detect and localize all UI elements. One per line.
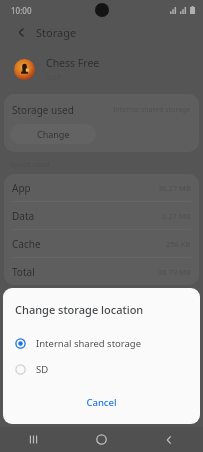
button[interactable]: Cache xyxy=(4,229,199,257)
staticText: Chess Free xyxy=(46,56,100,70)
button[interactable]: Recents xyxy=(0,427,67,452)
button[interactable]: Cancel xyxy=(74,392,129,413)
staticText: Data xyxy=(12,209,35,223)
button[interactable]: Total xyxy=(4,257,199,285)
button[interactable]: App xyxy=(4,174,199,201)
staticText: Cancel xyxy=(86,396,117,409)
button[interactable]: Home xyxy=(67,427,135,452)
staticText: 258 KB xyxy=(166,239,191,249)
button[interactable]: Back xyxy=(12,23,30,41)
staticText: Change xyxy=(37,128,70,140)
button[interactable]: Internal shared storage xyxy=(3,330,200,356)
staticText: SD xyxy=(36,363,49,376)
staticText: Storage xyxy=(36,25,77,40)
button[interactable]: SD xyxy=(3,356,200,382)
staticText: 38.79 MB xyxy=(158,267,191,277)
button[interactable]: Data xyxy=(4,201,199,229)
button[interactable]: Back xyxy=(135,427,203,452)
staticText: 36.27 MB xyxy=(158,183,191,193)
staticText: 2.27 MB xyxy=(162,211,191,221)
staticText: 10:00 xyxy=(11,5,32,16)
staticText: Total xyxy=(12,265,35,279)
staticText: Internal shared storage xyxy=(36,337,142,350)
button[interactable]: Change xyxy=(10,124,96,144)
staticText: Cache xyxy=(12,237,41,251)
staticText: App xyxy=(12,181,31,195)
staticText: Storage used xyxy=(12,103,74,117)
staticText: Change storage location xyxy=(15,302,144,317)
staticText: Internal shared storage xyxy=(113,105,191,115)
